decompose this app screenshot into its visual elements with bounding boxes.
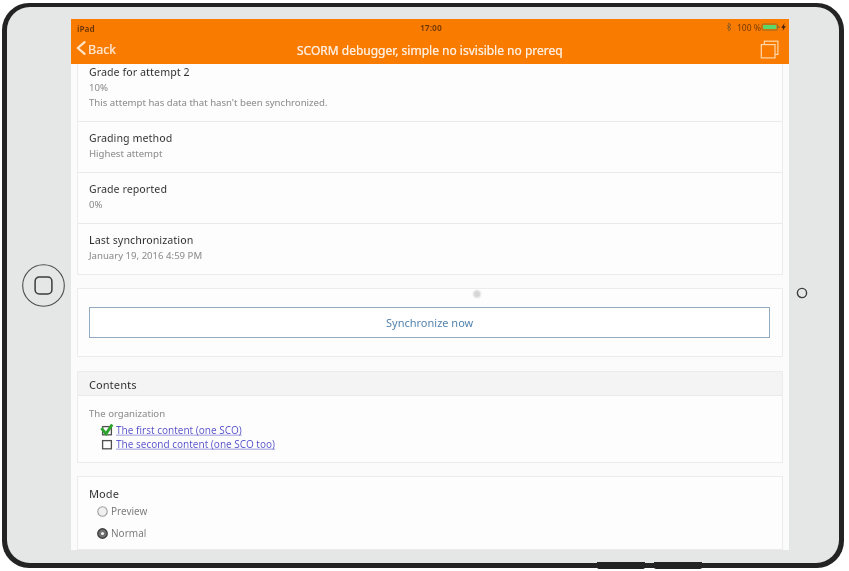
staticText: Preview: [111, 504, 148, 518]
button[interactable]: Back: [74, 35, 124, 60]
staticText: Grade for attempt 2: [89, 65, 190, 79]
staticText: 100 %: [737, 22, 762, 34]
staticText: SCORM debugger, simple no isvisible no p…: [297, 42, 563, 58]
staticText: 10%: [89, 81, 108, 94]
staticText: Back: [88, 41, 116, 58]
staticText: Mode: [89, 486, 119, 501]
staticText: January 19, 2016 4:59 PM: [89, 249, 203, 262]
staticText: Grading method: [89, 131, 173, 145]
button[interactable]: Preview: [97, 504, 148, 518]
button[interactable]: Synchronize now: [89, 307, 770, 338]
button[interactable]: Copy: [759, 38, 783, 64]
button[interactable]: The first content (one SCO): [102, 423, 242, 437]
staticText: 0%: [89, 198, 103, 211]
button[interactable]: Grade for attempt 2: [77, 55, 783, 121]
staticText: Normal: [111, 526, 147, 540]
button[interactable]: Normal: [97, 526, 147, 540]
staticText: The first content (one SCO): [116, 423, 242, 437]
staticText: 17:00: [420, 22, 442, 34]
button[interactable]: Grade reported: [77, 172, 783, 223]
staticText: Synchronize now: [386, 315, 474, 330]
staticText: iPad: [77, 23, 95, 34]
staticText: This attempt has data that hasn't been s…: [89, 96, 328, 109]
staticText: The organization: [89, 407, 166, 420]
staticText: The second content (one SCO too): [116, 437, 276, 451]
staticText: Grade reported: [89, 182, 168, 196]
button[interactable]: The second content (one SCO too): [102, 437, 276, 451]
button[interactable]: Grading method: [77, 121, 783, 172]
staticText: Last synchronization: [89, 233, 194, 247]
button[interactable]: Last synchronization: [77, 223, 783, 274]
staticText: Contents: [89, 377, 137, 392]
staticText: Highest attempt: [89, 147, 163, 160]
